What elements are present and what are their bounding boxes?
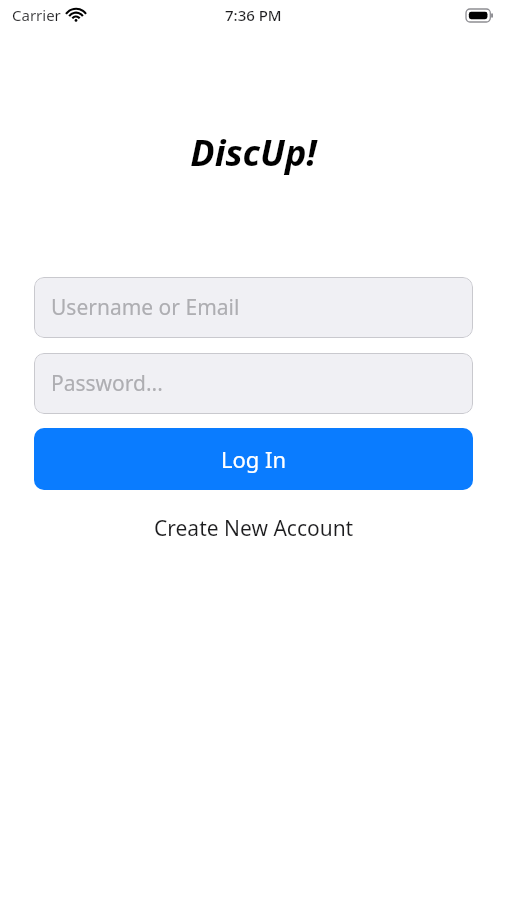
staticText: Log In	[221, 444, 287, 474]
staticText: DiscUp!	[0, 128, 507, 177]
staticText: Password...	[51, 369, 163, 398]
button[interactable]: Create New Account	[34, 508, 473, 548]
staticText: Carrier	[12, 5, 61, 25]
button[interactable]: Log In	[34, 428, 473, 490]
staticText: Username or Email	[51, 293, 240, 322]
staticText: 7:36 PM	[225, 5, 282, 25]
button[interactable]: Password...	[34, 353, 473, 414]
button[interactable]: Username or Email	[34, 277, 473, 338]
staticText: Create New Account	[154, 514, 354, 543]
